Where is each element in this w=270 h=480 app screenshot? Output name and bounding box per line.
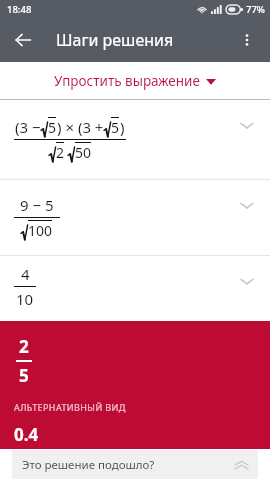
staticText: Это решение подошло? [22, 457, 155, 473]
staticText: 5 [111, 118, 120, 137]
staticText: 77% [246, 3, 265, 16]
staticText: 9 − 5 [20, 195, 54, 215]
button[interactable]: Упростить выражение [0, 62, 270, 99]
staticText: 100 [28, 221, 53, 240]
staticText: Упростить выражение [54, 72, 200, 90]
button[interactable]: Back [3, 20, 43, 60]
staticText: Шаги решения [56, 29, 174, 51]
button[interactable]: 4 [0, 256, 270, 316]
other: Expand step [236, 114, 258, 136]
staticText: 2 [56, 143, 65, 162]
staticText: 18:48 [7, 3, 32, 16]
button[interactable]: More options [227, 20, 267, 60]
staticText: ) [120, 117, 125, 137]
staticText: 0.4 [14, 423, 39, 446]
other: Expand step [236, 194, 258, 216]
staticText: АЛЬТЕРНАТИВНЫЙ ВИД [14, 401, 126, 413]
staticText: ) × (3 + [57, 117, 104, 137]
button[interactable]: 9 − 5 [0, 180, 270, 255]
staticText: 50 [75, 143, 92, 162]
staticText: 2 [19, 335, 29, 358]
staticText: 5 [48, 118, 57, 137]
staticText: 10 [16, 289, 34, 309]
button[interactable]: 2 [0, 321, 270, 449]
staticText: (3 − [15, 117, 41, 137]
staticText: 5 [19, 364, 29, 387]
other: Expand step [236, 270, 258, 292]
button[interactable]: (3 − [0, 100, 270, 179]
staticText: 4 [21, 264, 30, 284]
button[interactable]: Это решение подошло? [12, 450, 258, 479]
